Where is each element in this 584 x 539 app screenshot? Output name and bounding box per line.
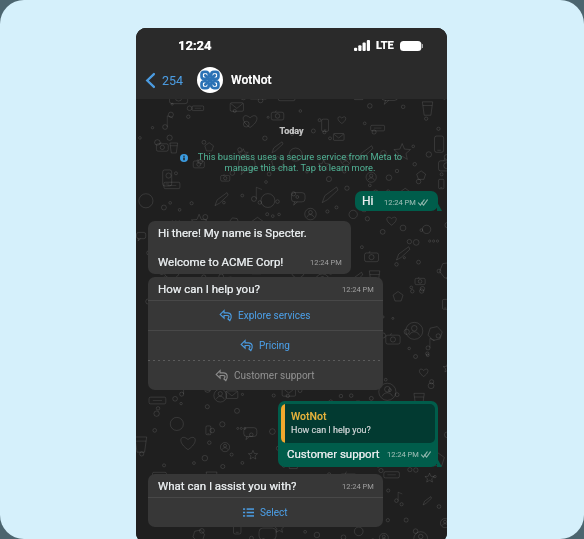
staticText: 12:24 PM [384,198,416,207]
button[interactable]: Explore services [148,301,383,330]
staticText: Today [136,126,447,137]
staticText: Select [260,507,288,519]
staticText: How can I help you? [158,282,260,295]
staticText: WotNot [291,410,327,422]
staticText: Customer support [234,370,315,382]
staticText: 12:24 PM [387,450,419,459]
staticText: 12:24 PM [342,482,374,491]
staticText: 12:24 PM [342,285,374,294]
staticText: 12:24 [178,38,212,53]
staticText: Hi [362,194,374,208]
button[interactable]: Customer support [148,361,383,390]
staticText: Customer support [287,447,380,460]
staticText: LTE [376,39,394,52]
staticText: Pricing [259,340,290,352]
staticText: Explore services [238,310,311,322]
staticText: 12:24 PM [310,258,342,267]
button[interactable]: 254 [144,69,188,92]
staticText: Hi there! My name is Specter. [158,226,307,239]
button[interactable]: Hi there! My name is Specter. [148,221,351,274]
staticText: This business uses a secure service from… [192,151,408,173]
button[interactable]: WotNot [278,401,438,467]
staticText: WotNot [231,73,272,87]
staticText: 254 [162,73,184,88]
button[interactable]: Select [148,498,383,527]
staticText: What can I assist you with? [158,479,297,492]
staticText: How can I help you? [291,425,371,436]
button[interactable]: Pricing [148,331,383,360]
button[interactable]: Hi [355,191,438,211]
staticText: Welcome to ACME Corp! [158,255,284,268]
